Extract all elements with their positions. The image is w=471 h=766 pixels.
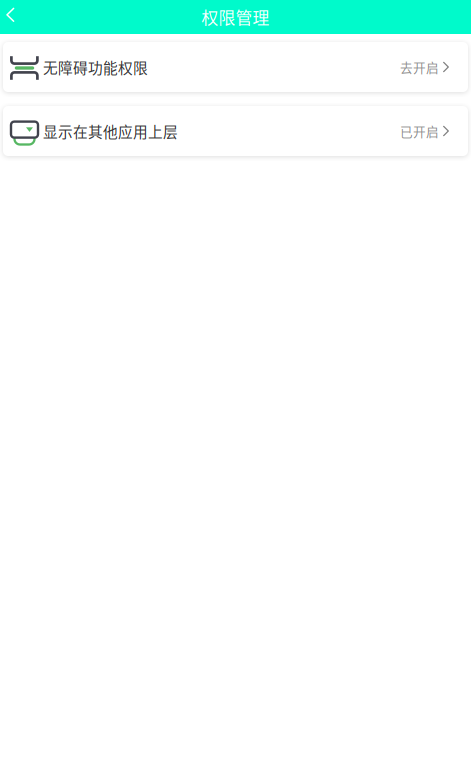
button[interactable]: Back xyxy=(0,0,21,34)
staticText: 无障碍功能权限 xyxy=(43,56,148,78)
button[interactable]: 无障碍功能权限 xyxy=(3,42,468,92)
staticText: 显示在其他应用上层 xyxy=(43,120,178,142)
staticText: 去开启 xyxy=(400,58,439,76)
staticText: 已开启 xyxy=(400,122,439,140)
button[interactable]: 显示在其他应用上层 xyxy=(3,106,468,156)
staticText: 权限管理 xyxy=(201,5,269,29)
